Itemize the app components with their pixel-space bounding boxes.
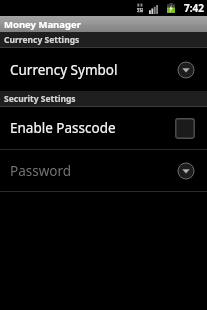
staticText: Currency Symbol — [10, 61, 118, 79]
staticText: Password — [10, 162, 72, 180]
staticText: Currency Settings — [4, 34, 80, 46]
staticText: 7:42 — [184, 1, 204, 15]
staticText: Security Settings — [4, 93, 76, 105]
button[interactable]: Currency Symbol — [0, 48, 207, 91]
button[interactable]: Choose password — [177, 162, 195, 180]
button[interactable]: Choose currency symbol — [177, 61, 195, 79]
button[interactable]: Enable Passcode — [0, 107, 207, 149]
button[interactable]: Enable Passcode checkbox — [175, 118, 195, 139]
button[interactable]: Password — [0, 150, 207, 191]
staticText: Money Manager — [4, 18, 81, 31]
staticText: Enable Passcode — [10, 119, 116, 137]
